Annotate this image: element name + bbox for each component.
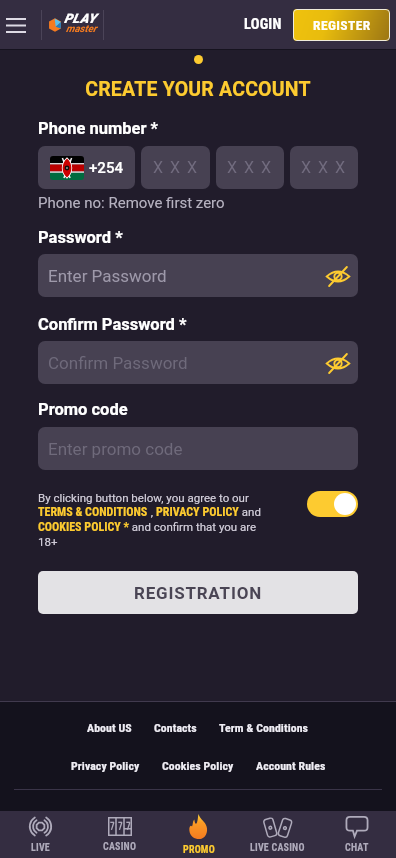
- button[interactable]: Contacts: [154, 721, 197, 735]
- staticText: and confirm that you are: [129, 520, 257, 533]
- staticText: Enter promo code: [48, 439, 183, 459]
- staticText: CHAT: [345, 842, 369, 854]
- button[interactable]: Term & Conditions: [219, 721, 309, 735]
- staticText: LIVE: [31, 842, 50, 854]
- button[interactable]: CASINO: [80, 811, 159, 858]
- staticText: Confirm Password *: [38, 315, 187, 334]
- button[interactable]: Privacy Policy: [71, 759, 140, 773]
- staticText: Enter Password: [48, 266, 167, 286]
- staticText: and: [239, 505, 261, 518]
- button[interactable]: X X X: [216, 146, 284, 189]
- staticText: Confirm Password: [48, 353, 188, 373]
- button[interactable]: LOGIN: [231, 10, 285, 39]
- staticText: CASINO: [103, 841, 137, 853]
- staticText: Phone number *: [38, 119, 159, 138]
- button[interactable]: LIVE CASINO: [238, 811, 317, 858]
- staticText: Phone no: Remove first zero: [38, 194, 225, 212]
- button[interactable]: Toggle password visibility: [322, 347, 354, 379]
- staticText: +254: [89, 159, 123, 177]
- staticText: 18+: [38, 535, 58, 548]
- staticText: LIVE CASINO: [250, 842, 305, 854]
- button[interactable]: Menu: [0, 5, 31, 45]
- button[interactable]: X X X: [290, 146, 358, 189]
- button[interactable]: +254: [38, 146, 135, 189]
- button[interactable]: Cookies Policy: [162, 759, 234, 773]
- staticText: X X X: [227, 158, 273, 177]
- button[interactable]: TERMS & CONDITIONS: [38, 505, 148, 519]
- button[interactable]: Account Rules: [256, 759, 326, 773]
- staticText: REGISTRATION: [134, 583, 263, 603]
- staticText: master: [66, 23, 97, 35]
- staticText: REGISTER: [313, 17, 371, 33]
- staticText: Cookies Policy: [162, 759, 234, 773]
- button[interactable]: Enter promo code: [38, 427, 358, 470]
- staticText: Password *: [38, 228, 123, 247]
- button[interactable]: Confirm Password: [38, 341, 358, 384]
- staticText: PLAY: [64, 11, 97, 26]
- button[interactable]: REGISTRATION: [38, 571, 358, 614]
- button[interactable]: COOKIES POLICY *: [38, 520, 129, 534]
- staticText: Privacy Policy: [71, 759, 140, 773]
- staticText: ,: [148, 505, 156, 518]
- button[interactable]: Toggle password visibility: [322, 260, 354, 292]
- staticText: Term & Conditions: [219, 721, 309, 735]
- staticText: By clicking button below, you agree to o…: [38, 491, 249, 504]
- button[interactable]: LIVE: [0, 811, 80, 858]
- button[interactable]: REGISTER: [293, 9, 390, 41]
- button[interactable]: Enter Password: [38, 254, 358, 297]
- staticText: X X X: [301, 158, 347, 177]
- button[interactable]: CHAT: [317, 811, 396, 858]
- button[interactable]: PROMO: [159, 811, 238, 858]
- staticText: Promo code: [38, 400, 128, 419]
- staticText: About US: [87, 721, 132, 735]
- button[interactable]: X X X: [141, 146, 210, 189]
- staticText: X X X: [153, 158, 199, 177]
- staticText: PROMO: [183, 844, 215, 856]
- staticText: Account Rules: [256, 759, 326, 773]
- staticText: Contacts: [154, 721, 197, 735]
- button[interactable]: Agree toggle: [307, 491, 358, 517]
- staticText: LOGIN: [244, 16, 282, 33]
- staticText: CREATE YOUR ACCOUNT: [0, 78, 396, 101]
- button[interactable]: PRIVACY POLICY: [156, 505, 239, 519]
- button[interactable]: About US: [87, 721, 132, 735]
